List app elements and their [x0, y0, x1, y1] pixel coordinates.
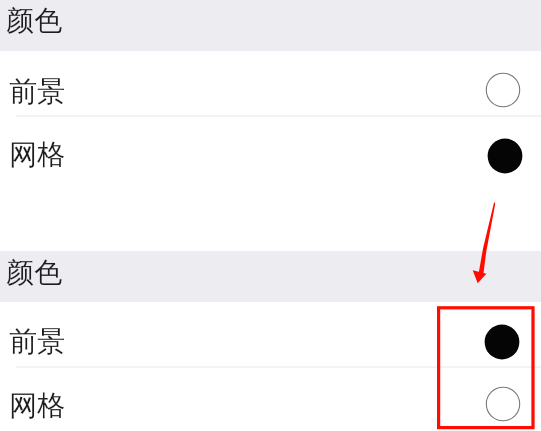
- button[interactable]: 网格 option: [485, 386, 521, 422]
- button[interactable]: 前景 selected: [484, 324, 520, 360]
- staticText: 前景: [9, 74, 65, 109]
- button[interactable]: 网格: [0, 367, 541, 431]
- staticText: 颜色: [6, 255, 62, 290]
- button[interactable]: 网格 selected: [487, 138, 523, 174]
- button[interactable]: 网格: [0, 116, 541, 181]
- staticText: 网格: [9, 137, 65, 172]
- staticText: 前景: [9, 324, 65, 359]
- staticText: 颜色: [6, 3, 62, 38]
- staticText: 网格: [9, 388, 65, 423]
- button[interactable]: 前景: [0, 51, 541, 116]
- button[interactable]: 前景: [0, 302, 541, 367]
- button[interactable]: 前景 option: [485, 72, 521, 108]
